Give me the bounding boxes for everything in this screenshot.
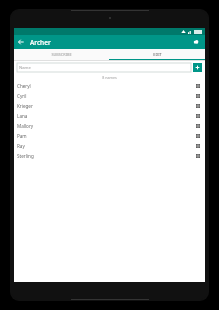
button[interactable]: Krieger	[14, 101, 205, 111]
staticText: 8 names	[102, 75, 117, 80]
staticText: Cyril	[17, 93, 27, 99]
button[interactable]: SUBSCRIBE	[14, 49, 109, 60]
button[interactable]: Lana	[14, 111, 205, 121]
staticText: Pam	[17, 133, 27, 139]
button[interactable]: Name	[17, 63, 191, 72]
button[interactable]: Mallory	[14, 121, 205, 131]
staticText: Krieger	[17, 103, 33, 109]
button[interactable]: Ray	[14, 141, 205, 151]
staticText: EDIT	[153, 52, 162, 57]
button[interactable]: EDIT	[109, 49, 205, 60]
button[interactable]: Delete Lana	[194, 112, 202, 120]
button[interactable]: Cyril	[14, 91, 205, 101]
staticText: Sterling	[17, 153, 34, 159]
button[interactable]: Delete Pam	[194, 132, 202, 140]
button[interactable]: Navigate up	[14, 35, 28, 49]
button[interactable]: Delete Cheryl	[194, 82, 202, 90]
staticText: Lana	[17, 113, 28, 119]
button[interactable]: Delete Ray	[194, 142, 202, 150]
button[interactable]: Delete Cyril	[194, 92, 202, 100]
button[interactable]: Add name	[193, 63, 202, 72]
staticText: Archer	[30, 38, 51, 47]
staticText: Mallory	[17, 123, 34, 129]
button[interactable]: Delete Sterling	[194, 152, 202, 160]
button[interactable]: Pam	[14, 131, 205, 141]
staticText: Name	[19, 65, 31, 71]
staticText: Cheryl	[17, 83, 31, 89]
staticText: SUBSCRIBE	[51, 52, 72, 57]
button[interactable]: Sterling	[14, 151, 205, 161]
button[interactable]: Delete Mallory	[194, 122, 202, 130]
button[interactable]: Sync	[189, 35, 203, 49]
button[interactable]: Cheryl	[14, 81, 205, 91]
staticText: Ray	[17, 143, 25, 149]
button[interactable]: Delete Krieger	[194, 102, 202, 110]
